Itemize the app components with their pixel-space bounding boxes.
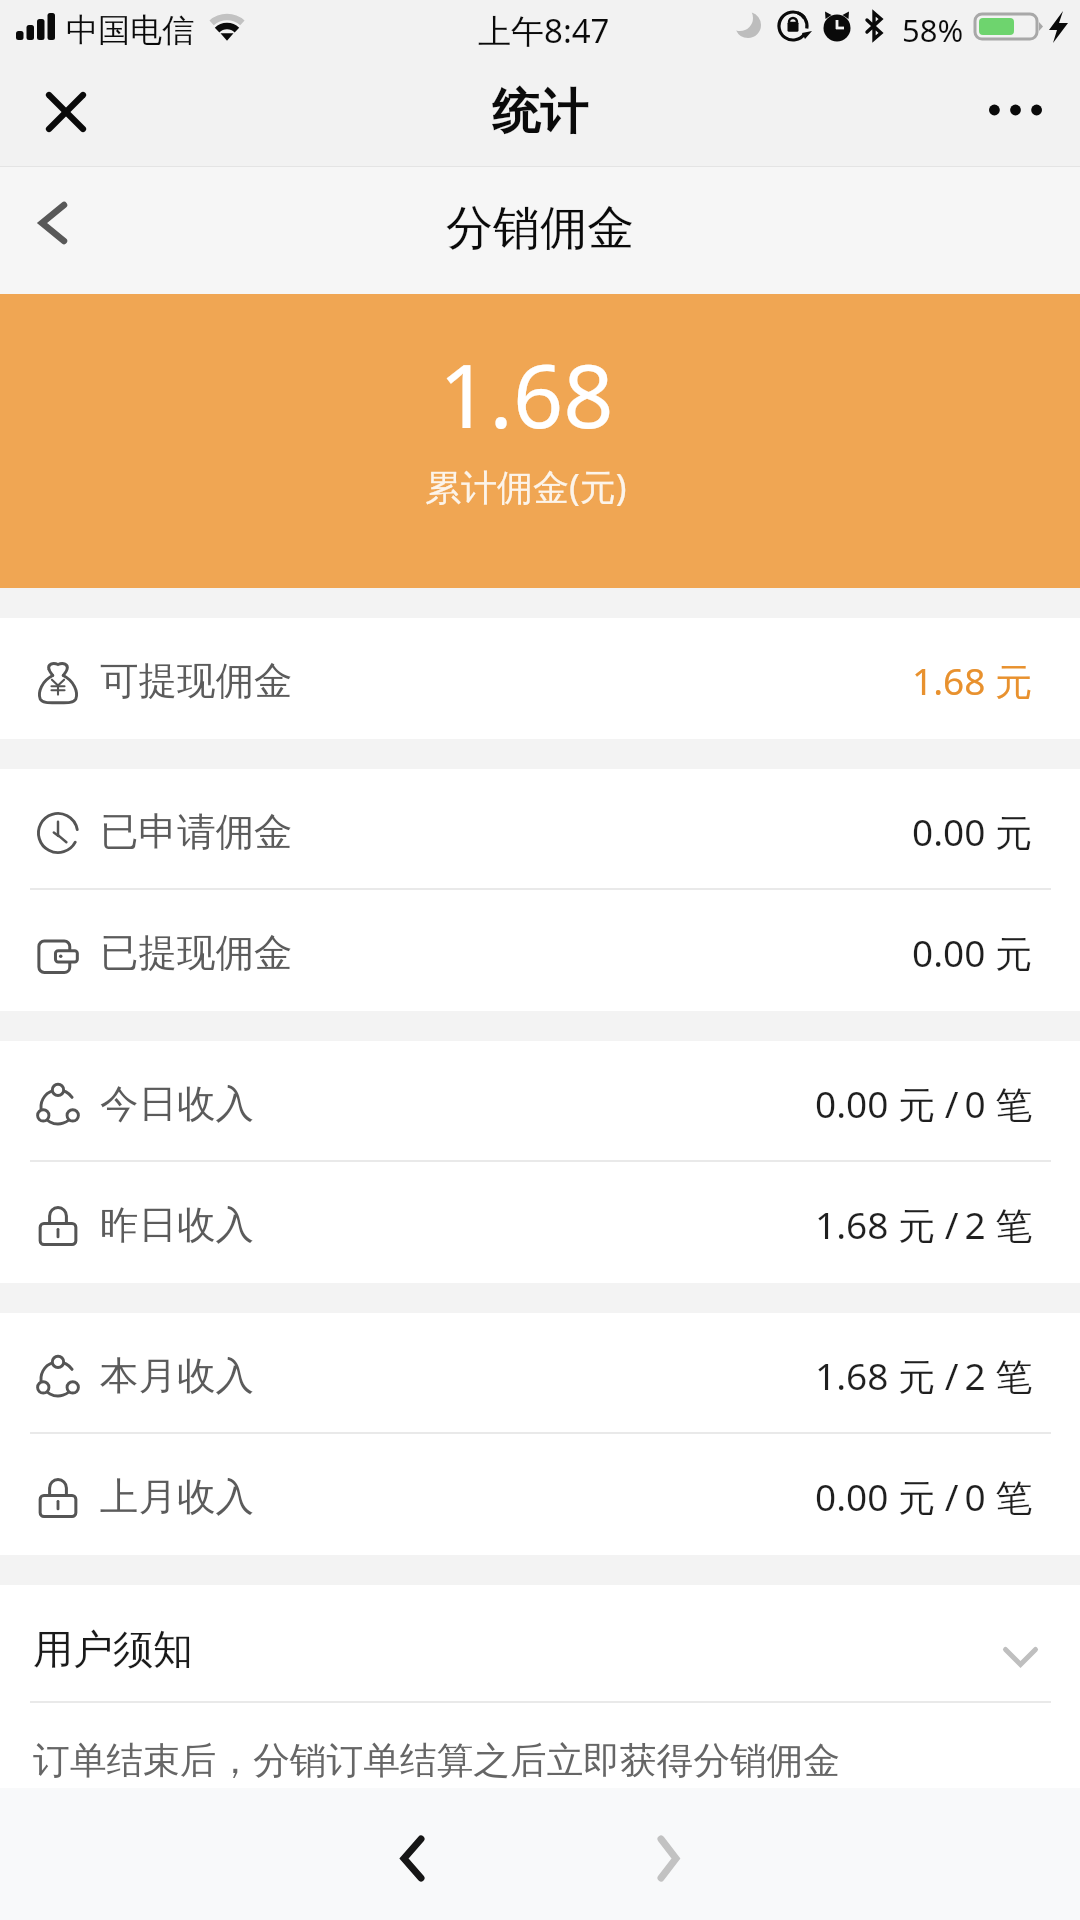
button[interactable]: 用户须知 [0, 1585, 1080, 1703]
button[interactable]: Forward [616, 1806, 720, 1910]
staticText: 58% [902, 9, 964, 51]
staticText: 本月收入 [100, 1352, 254, 1401]
staticText: 已提现佣金 [100, 929, 293, 978]
staticText: 上月收入 [100, 1473, 254, 1522]
staticText: 0.00 元 [912, 927, 1033, 978]
staticText: 统计 [492, 82, 588, 142]
staticText: 已申请佣金 [100, 808, 293, 857]
staticText: 订单结束后，分销订单结算之后立即获得分销佣金 [33, 1738, 841, 1784]
staticText: 1.68 元 [912, 655, 1033, 706]
staticText: 0.00 元 / 0 笔 [815, 1471, 1033, 1522]
staticText: 1.68 [439, 334, 614, 454]
button[interactable]: 上月收入 [0, 1434, 1080, 1555]
button[interactable]: 昨日收入 [0, 1162, 1080, 1283]
staticText: 1.68 元 / 2 笔 [815, 1350, 1033, 1401]
button[interactable]: 今日收入 [0, 1041, 1080, 1162]
button[interactable]: More options [970, 75, 1060, 145]
staticText: 昨日收入 [100, 1201, 254, 1250]
button[interactable]: 已申请佣金 [0, 769, 1080, 890]
staticText: 上午8:47 [478, 8, 610, 53]
staticText: 0.00 元 [912, 806, 1033, 857]
staticText: 0.00 元 / 0 笔 [815, 1078, 1033, 1129]
button[interactable]: 可提现佣金 [0, 618, 1080, 739]
staticText: 中国电信 [66, 10, 194, 50]
button[interactable]: Back [8, 178, 98, 268]
staticText: 用户须知 [33, 1624, 193, 1674]
button[interactable]: 本月收入 [0, 1313, 1080, 1434]
button[interactable]: 已提现佣金 [0, 890, 1080, 1011]
staticText: 累计佣金(元) [425, 462, 627, 511]
staticText: 今日收入 [100, 1080, 254, 1129]
button[interactable]: Close [26, 72, 106, 152]
staticText: 可提现佣金 [100, 657, 293, 706]
staticText: 分销佣金 [446, 199, 634, 258]
button[interactable]: Back [360, 1806, 464, 1910]
staticText: 1.68 元 / 2 笔 [815, 1199, 1033, 1250]
